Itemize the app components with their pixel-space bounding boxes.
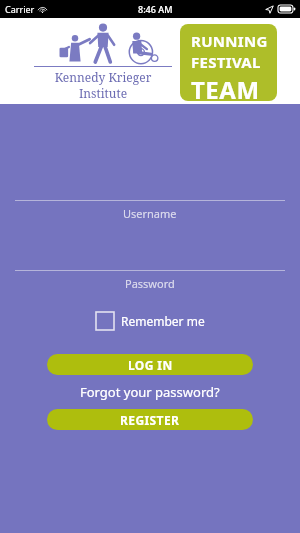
staticText: FESTIVAL [191,52,261,72]
button[interactable]: REGISTER [47,409,253,430]
staticText: REGISTER [120,412,180,428]
staticText: Remember me [121,313,205,329]
button[interactable]: Remember me [96,312,205,330]
staticText: TEAM [191,73,260,101]
button[interactable]: Username [0,200,300,226]
staticText: Username [123,206,177,221]
staticText: RUNNING [191,31,268,51]
staticText: Password [125,276,175,291]
staticText: Kennedy Krieger Institute [33,69,173,101]
staticText: Forgot your password? [80,383,220,401]
staticText: Carrier [5,3,35,15]
button[interactable]: RUNNING [180,24,277,101]
staticText: 8:46 AM [138,3,173,15]
staticText: LOG IN [128,357,173,373]
button[interactable]: Kennedy Krieger Institute [33,22,173,101]
button[interactable]: LOG IN [47,354,253,375]
button[interactable]: Password [0,270,300,296]
button[interactable]: Forgot your password? [0,381,300,403]
